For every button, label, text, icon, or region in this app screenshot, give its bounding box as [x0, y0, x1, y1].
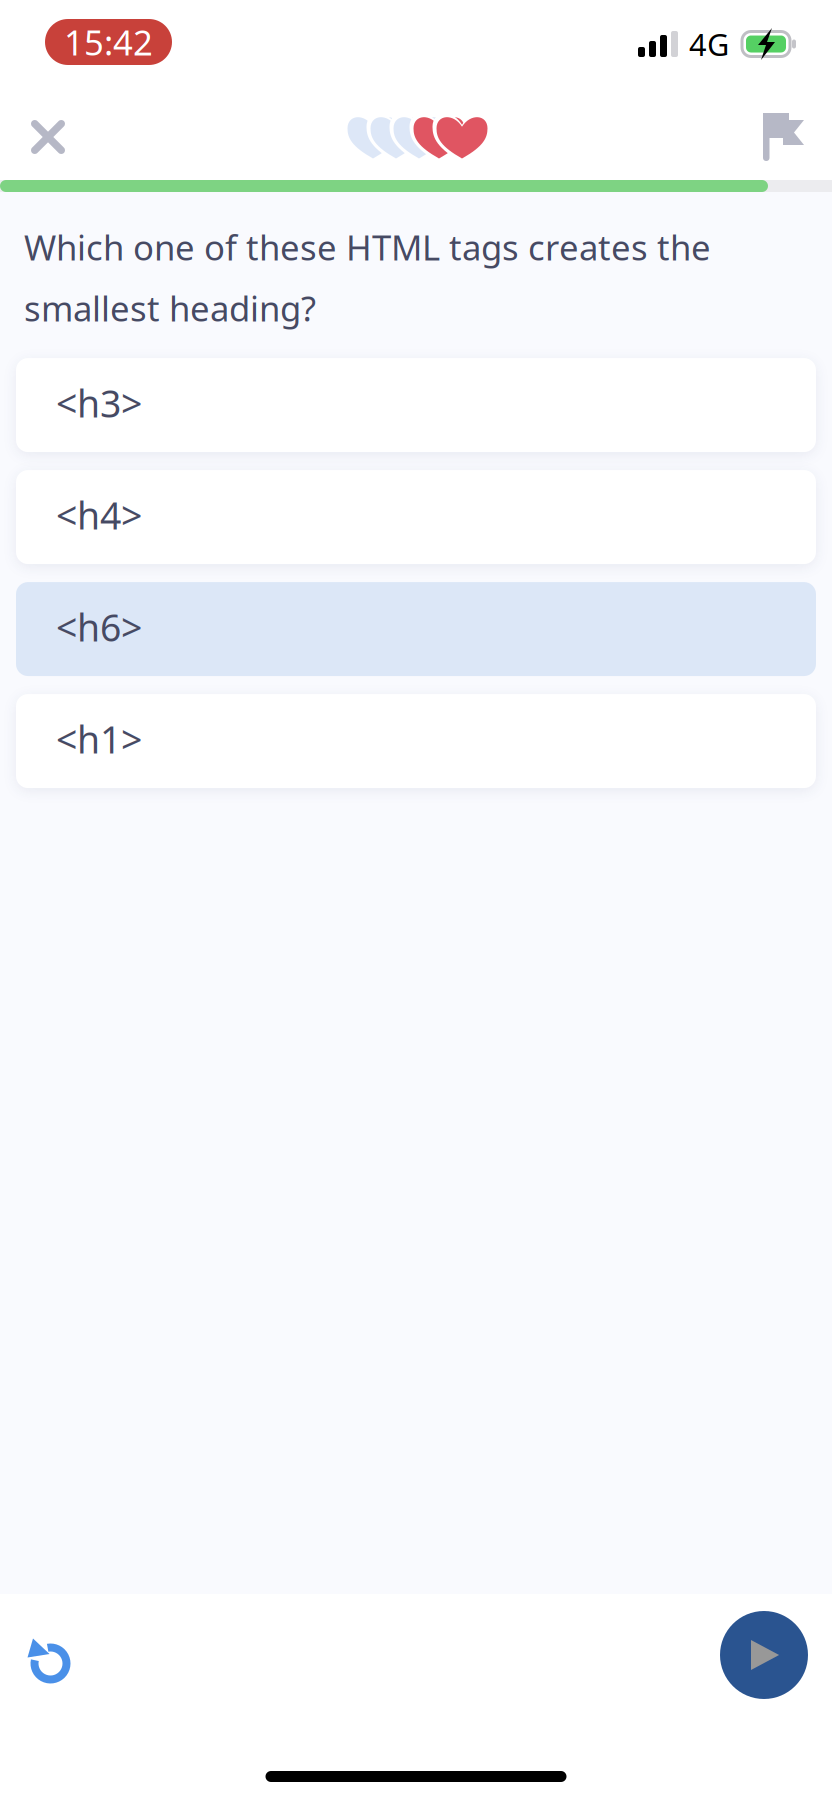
button[interactable]: Close	[0, 84, 96, 180]
button[interactable]: Report question	[740, 84, 828, 180]
button[interactable]: Undo	[0, 1594, 96, 1706]
button[interactable]: <h3>	[16, 358, 816, 452]
button[interactable]: <h4>	[16, 470, 816, 564]
staticText: 4G	[689, 24, 729, 64]
staticText: <h1>	[56, 714, 142, 764]
staticText: <h6>	[56, 602, 142, 652]
staticText: <h4>	[56, 490, 142, 540]
staticText: 15:42	[64, 19, 153, 65]
staticText: <h3>	[56, 378, 142, 428]
button[interactable]: <h6>	[16, 582, 816, 676]
button[interactable]: <h1>	[16, 694, 816, 788]
staticText: Which one of these HTML tags creates the…	[24, 224, 711, 331]
button[interactable]: Next	[720, 1594, 832, 1706]
